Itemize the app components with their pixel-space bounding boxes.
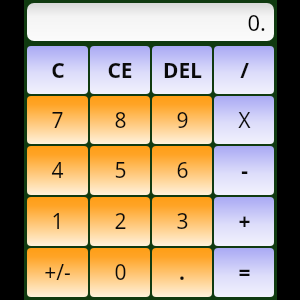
button[interactable]: X bbox=[214, 96, 274, 144]
button[interactable]: / bbox=[214, 46, 274, 94]
staticText: DEL bbox=[163, 56, 202, 85]
button[interactable]: - bbox=[214, 146, 274, 195]
staticText: . bbox=[179, 258, 185, 287]
button[interactable]: 2 bbox=[90, 197, 150, 246]
staticText: 3 bbox=[176, 207, 189, 236]
button[interactable]: 7 bbox=[27, 96, 88, 144]
button[interactable]: +/- bbox=[27, 248, 88, 297]
button[interactable]: 9 bbox=[152, 96, 212, 144]
button[interactable]: 4 bbox=[27, 146, 88, 195]
staticText: - bbox=[241, 156, 248, 185]
staticText: C bbox=[51, 56, 65, 85]
button[interactable]: CE bbox=[90, 46, 150, 94]
staticText: CE bbox=[107, 56, 133, 85]
button[interactable]: 1 bbox=[27, 197, 88, 246]
staticText: + bbox=[238, 207, 251, 236]
button[interactable]: 0. bbox=[27, 3, 274, 41]
staticText: 8 bbox=[114, 106, 127, 135]
staticText: 2 bbox=[114, 207, 127, 236]
staticText: 9 bbox=[176, 106, 189, 135]
button[interactable]: 0 bbox=[90, 248, 150, 297]
staticText: 0 bbox=[114, 258, 127, 287]
staticText: 4 bbox=[51, 156, 64, 185]
button[interactable]: 6 bbox=[152, 146, 212, 195]
button[interactable]: . bbox=[152, 248, 212, 297]
button[interactable]: 5 bbox=[90, 146, 150, 195]
staticText: +/- bbox=[44, 258, 71, 287]
staticText: / bbox=[240, 56, 249, 85]
staticText: 1 bbox=[51, 207, 64, 236]
staticText: 6 bbox=[176, 156, 189, 185]
button[interactable]: = bbox=[214, 248, 274, 297]
button[interactable]: C bbox=[27, 46, 88, 94]
button[interactable]: 8 bbox=[90, 96, 150, 144]
staticText: 5 bbox=[114, 156, 127, 185]
staticText: 7 bbox=[51, 106, 64, 135]
button[interactable]: + bbox=[214, 197, 274, 246]
staticText: = bbox=[238, 258, 251, 287]
staticText: X bbox=[238, 106, 251, 135]
button[interactable]: DEL bbox=[152, 46, 212, 94]
button[interactable]: 3 bbox=[152, 197, 212, 246]
staticText: 0. bbox=[247, 7, 266, 37]
